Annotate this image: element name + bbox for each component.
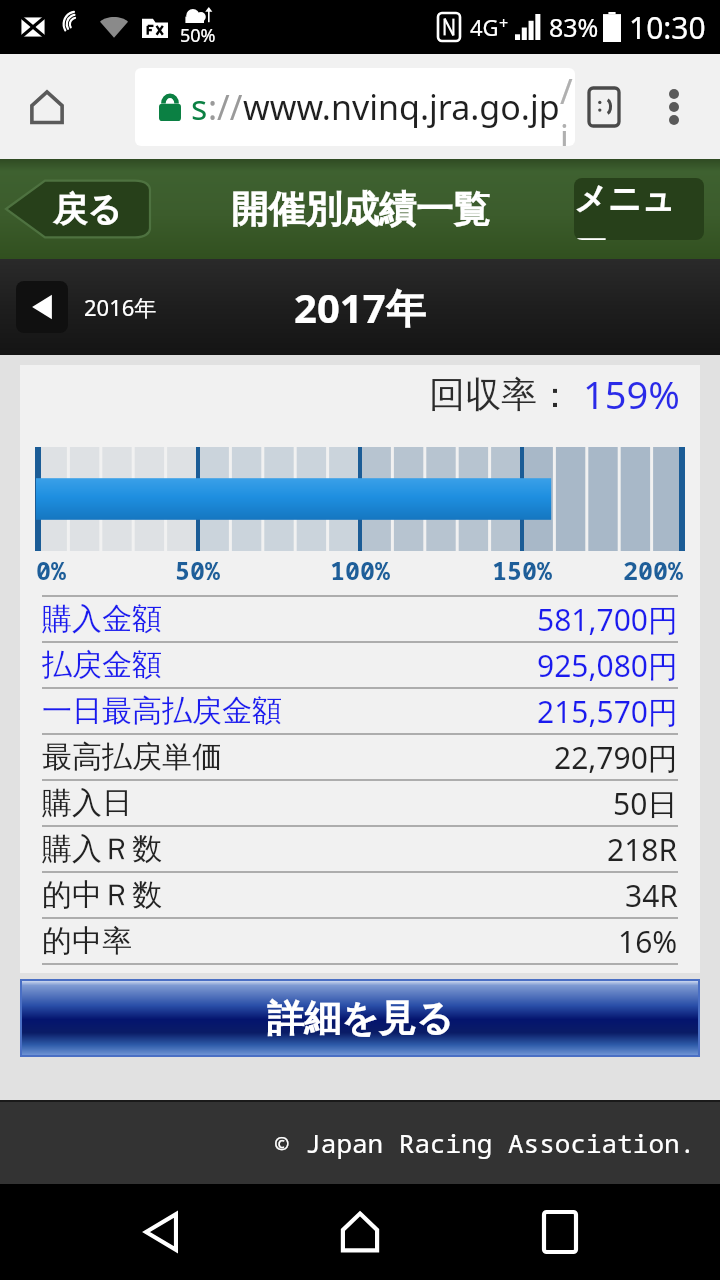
staticText: 581,700円 (537, 599, 678, 640)
button[interactable]: 戻る (0, 176, 150, 242)
staticText: /j (560, 68, 575, 146)
button[interactable]: 詳細を見る (22, 981, 698, 1055)
staticText: 一日最高払戻金額 (42, 692, 282, 730)
staticText: 34R (625, 875, 678, 916)
staticText: 回収率： (429, 372, 573, 417)
button[interactable]: Home (24, 84, 70, 130)
staticText: 払戻金額 (42, 646, 162, 684)
button[interactable]: 最高払戻単価 (42, 735, 678, 779)
staticText: 50日 (613, 783, 678, 824)
staticText: 200% (623, 553, 684, 587)
staticText: 0% (36, 553, 67, 587)
staticText: 詳細を見る (267, 995, 454, 1042)
staticText: 最高払戻単価 (42, 738, 222, 776)
staticText: 4G (470, 12, 499, 42)
staticText: + (499, 12, 509, 34)
staticText: 購入Ｒ数 (42, 830, 162, 868)
staticText: 16% (618, 921, 678, 962)
staticText: 159% (583, 368, 680, 420)
button[interactable]: 一日最高払戻金額 (42, 689, 678, 733)
other: Previous year (16, 281, 68, 333)
staticText: 2017年 (294, 280, 426, 335)
button[interactable]: Previous year (16, 281, 157, 333)
staticText: 215,570円 (537, 691, 678, 732)
button[interactable]: Back (122, 1193, 200, 1271)
staticText: 2016年 (84, 292, 157, 322)
button[interactable]: s (135, 68, 575, 146)
staticText: 218R (607, 829, 678, 870)
button[interactable]: 購入Ｒ数 (42, 827, 678, 871)
button[interactable]: More options (650, 83, 698, 131)
staticText: www.nvinq.jra.go.jp (243, 84, 560, 130)
staticText: 的中率 (42, 922, 132, 960)
button[interactable]: 的中Ｒ数 (42, 873, 678, 917)
button[interactable]: 購入日 (42, 781, 678, 825)
staticText: 的中Ｒ数 (42, 876, 162, 914)
button[interactable]: Home (321, 1193, 399, 1271)
staticText: 22,790円 (554, 737, 678, 778)
button[interactable]: Recent apps (521, 1193, 599, 1271)
staticText: 100% (330, 553, 391, 587)
staticText: 開催別成績一覧 (231, 186, 490, 233)
staticText: :// (208, 84, 243, 130)
staticText: 購入金額 (42, 600, 162, 638)
button[interactable]: 購入金額 (42, 597, 678, 641)
staticText: 50% (180, 23, 216, 48)
staticText: 購入日 (42, 784, 132, 822)
staticText: 50% (175, 553, 221, 587)
staticText: 10:30 (629, 7, 706, 48)
staticText: 戻る (53, 188, 122, 231)
staticText: © Japan Racing Association. (274, 1125, 696, 1160)
staticText: 925,080円 (537, 645, 678, 686)
staticText: メニュー (574, 178, 704, 240)
button[interactable]: Reader mode (580, 83, 628, 131)
button[interactable]: 払戻金額 (42, 643, 678, 687)
staticText: 83% (549, 10, 599, 44)
staticText: 150% (492, 553, 553, 587)
button[interactable]: 的中率 (42, 919, 678, 963)
staticText: s (191, 84, 208, 130)
button[interactable]: メニュー (574, 178, 704, 240)
